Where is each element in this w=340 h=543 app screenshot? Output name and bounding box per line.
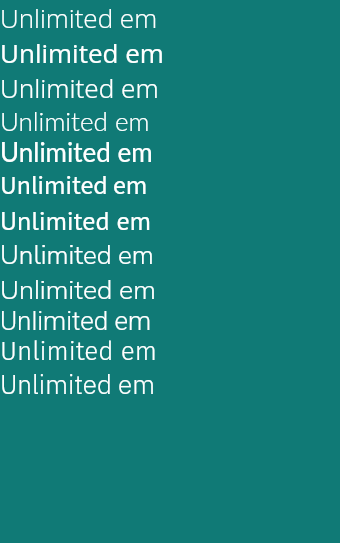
staticText: Unlimited em xyxy=(0,273,156,306)
staticText: Unlimited em xyxy=(0,367,155,401)
staticText: Unlimited em xyxy=(0,70,159,105)
staticText: Unlimited em xyxy=(0,204,151,238)
staticText: Unlimited em xyxy=(0,306,152,336)
staticText: Unlimited em xyxy=(0,336,157,367)
staticText: Unlimited em xyxy=(0,238,154,273)
staticText: Unlimited em xyxy=(0,105,150,136)
staticText: Unlimited em xyxy=(0,167,148,204)
staticText: Unlimited em xyxy=(0,136,153,167)
staticText: Unlimited em xyxy=(0,35,164,70)
staticText: Unlimited em xyxy=(0,0,158,35)
